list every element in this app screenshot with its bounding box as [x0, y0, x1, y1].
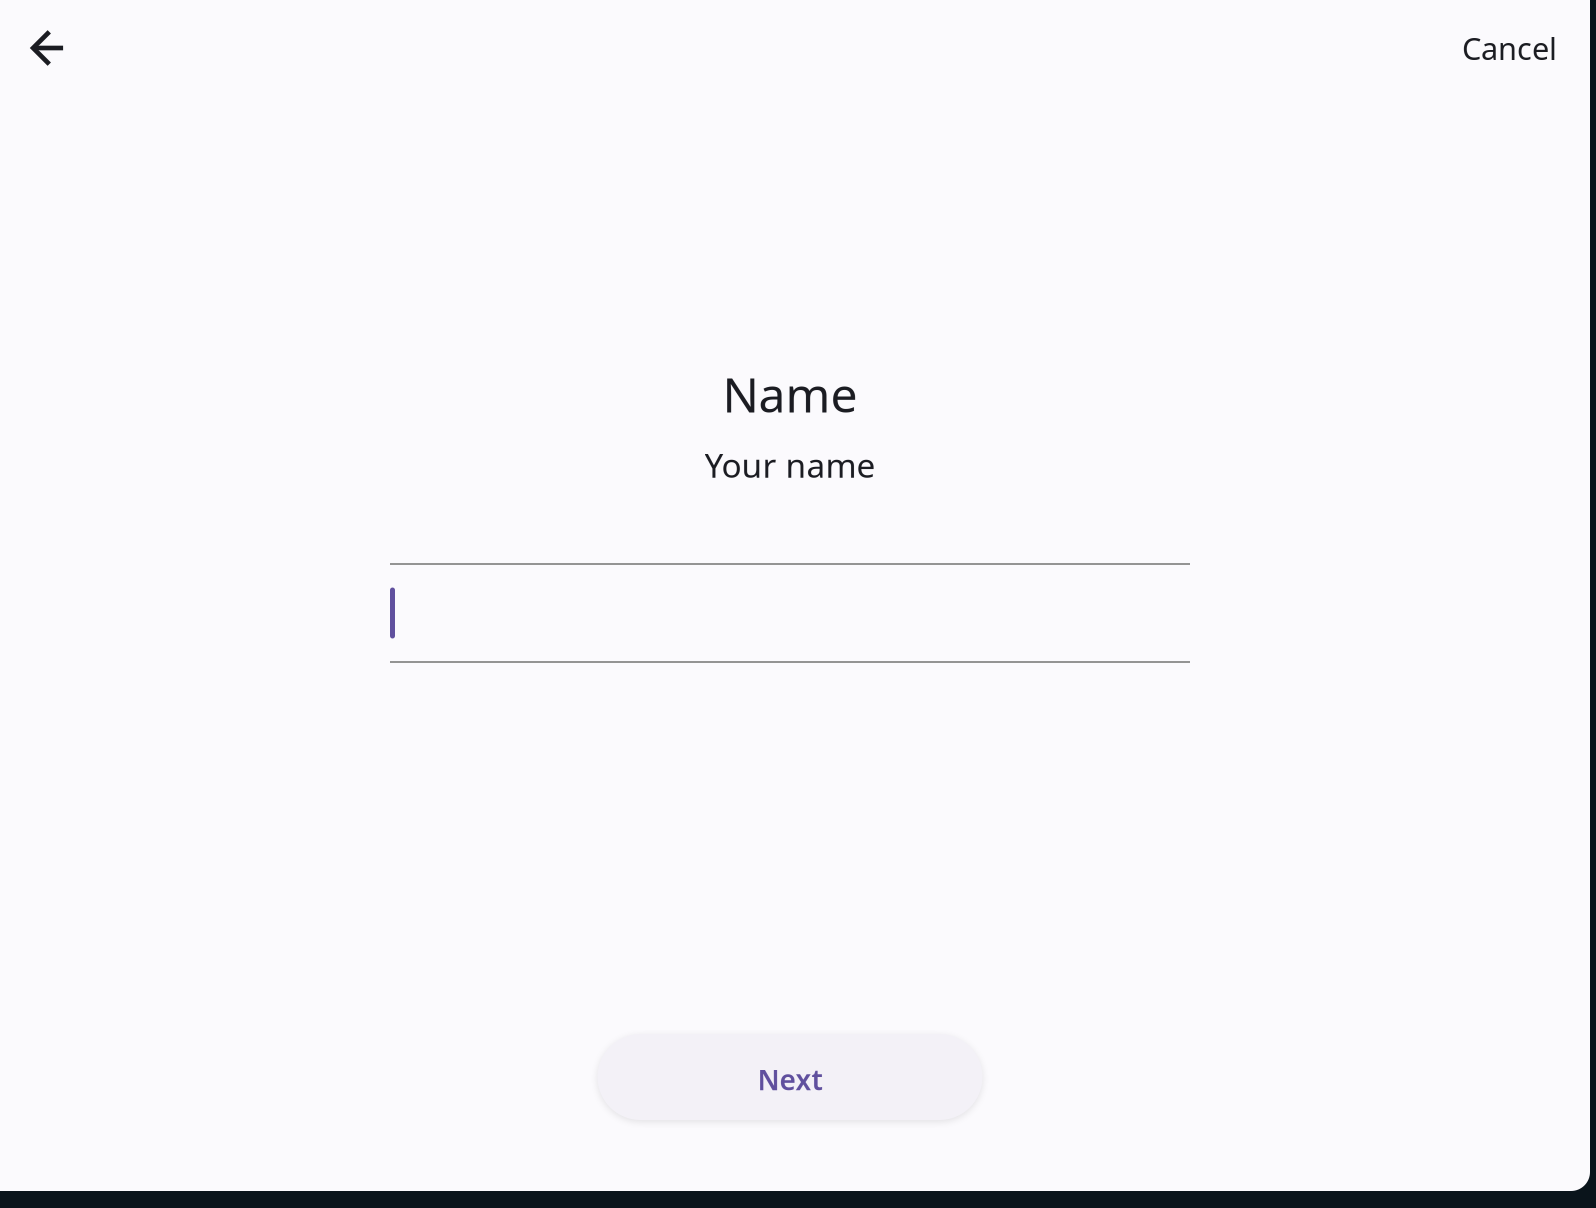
staticText: Cancel: [1462, 28, 1557, 68]
button[interactable]: Next: [597, 1034, 982, 1120]
staticText: Your name: [704, 443, 875, 487]
button[interactable]: Back: [16, 16, 80, 80]
staticText: Name: [722, 362, 857, 426]
staticText: Next: [757, 1061, 822, 1098]
button[interactable]: Cancel: [1450, 16, 1569, 80]
